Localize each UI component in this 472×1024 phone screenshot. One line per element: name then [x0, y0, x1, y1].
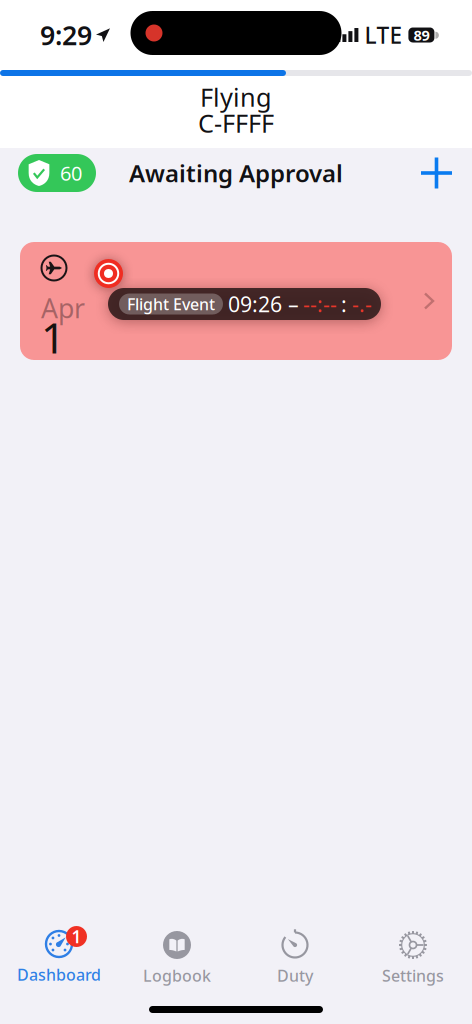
staticText: Dashboard	[17, 964, 101, 985]
staticText: Awaiting Approval	[129, 157, 343, 189]
staticText: 89	[413, 25, 429, 45]
button[interactable]: Logbook	[118, 926, 236, 990]
staticText: Flying	[200, 80, 272, 114]
button[interactable]: 1	[0, 927, 118, 989]
staticText: 60	[60, 160, 82, 186]
staticText: -.-	[352, 290, 372, 318]
staticText: Settings	[382, 965, 444, 986]
staticText: :	[341, 290, 347, 318]
staticText: Flight Event	[127, 293, 215, 315]
staticText: C-FFFF	[198, 106, 274, 140]
button[interactable]: Add flight	[416, 152, 457, 193]
staticText: 1	[41, 309, 65, 365]
staticText: 9:29	[40, 17, 92, 53]
button[interactable]: Apr	[20, 242, 452, 360]
staticText: --:--	[303, 290, 337, 318]
staticText: 09:26 –	[228, 290, 299, 318]
staticText: Logbook	[143, 965, 211, 986]
staticText: Apr	[41, 290, 85, 326]
button[interactable]: Settings	[354, 926, 472, 990]
staticText: 1	[71, 925, 81, 948]
staticText: Duty	[277, 965, 313, 986]
staticText: LTE	[364, 20, 402, 50]
button[interactable]: 60	[18, 154, 96, 192]
button[interactable]: Duty	[236, 926, 354, 990]
